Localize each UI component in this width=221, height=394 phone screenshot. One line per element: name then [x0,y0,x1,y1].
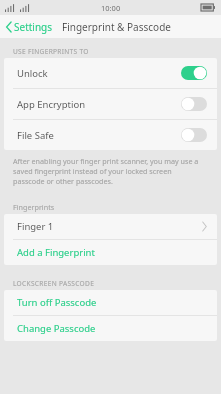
staticText: Fingerprints [13,202,55,212]
button[interactable]: Turn off Passcode [4,290,217,315]
button[interactable]: Finger 1 [4,214,217,239]
staticText: Fingerprint & Passcode [62,20,171,34]
staticText: Settings [14,20,53,34]
staticText: LOCKSCREEN PASSCODE [13,279,95,288]
staticText: File Safe [17,129,181,142]
staticText: Change Passcode [17,322,96,335]
button[interactable]: Change Passcode [4,316,217,341]
staticText: Finger 1 [17,220,202,233]
staticText: USE FINGERPRINTS TO [13,47,89,56]
button[interactable]: Add a Fingerprint [4,240,217,265]
staticText: Add a Fingerprint [17,246,95,259]
staticText: App Encryption [17,98,181,111]
staticText: Unlock [17,67,181,80]
button[interactable]: File Safe [4,120,217,150]
button[interactable]: Back to Settings [0,16,59,38]
staticText: After enabling your finger print scanner… [13,156,205,186]
button[interactable]: App Encryption [4,89,217,119]
button[interactable]: Unlock [4,58,217,88]
staticText: 10:00 [101,3,121,13]
staticText: Turn off Passcode [17,296,97,309]
